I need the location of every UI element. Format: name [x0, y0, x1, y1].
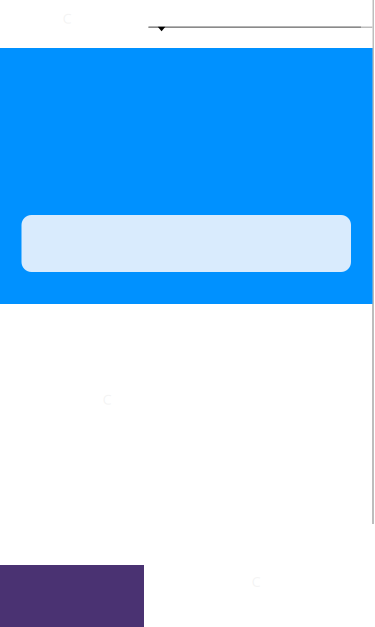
staticText: C — [251, 571, 260, 591]
